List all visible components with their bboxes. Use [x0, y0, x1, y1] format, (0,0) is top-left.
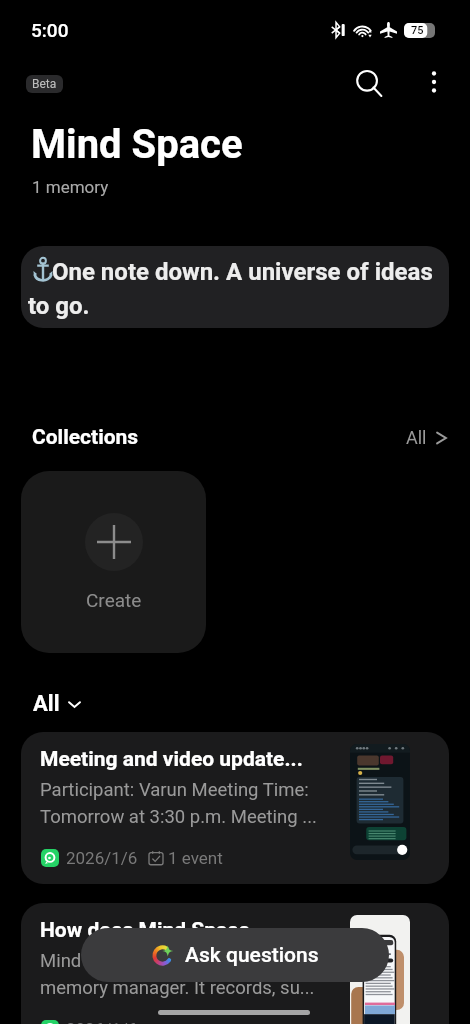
- staticText: 2026/1/6: [66, 848, 138, 868]
- button[interactable]: All: [400, 421, 455, 454]
- button[interactable]: More options: [412, 60, 456, 104]
- staticText: Beta: [32, 77, 57, 91]
- staticText: 1 memory: [32, 177, 109, 197]
- staticText: Participant: Varun Meeting Time: Tomorro…: [40, 779, 330, 827]
- staticText: 5:00: [31, 19, 69, 41]
- button[interactable]: Create: [21, 471, 206, 653]
- button[interactable]: Search: [347, 61, 391, 105]
- button[interactable]: Meeting and video update...: [21, 732, 449, 884]
- button[interactable]: One note down. A universe of ideas to go…: [21, 246, 449, 328]
- staticText: 1 event: [168, 848, 223, 868]
- staticText: How does Mind Space...: [40, 918, 330, 943]
- staticText: Collections: [32, 425, 139, 450]
- staticText: Mind Space: [31, 121, 243, 168]
- button[interactable]: How does Mind Space...: [21, 903, 449, 1024]
- staticText: Meeting and video update...: [40, 747, 330, 772]
- staticText: Create: [86, 589, 142, 611]
- staticText: 75: [411, 24, 424, 37]
- button[interactable]: Ask questions: [81, 928, 389, 982]
- staticText: 2026/1/6: [66, 1019, 138, 1024]
- staticText: One note down. A universe of ideas to go…: [28, 258, 442, 320]
- staticText: All: [406, 427, 427, 448]
- button[interactable]: Beta: [26, 75, 63, 93]
- staticText: Ask questions: [185, 943, 319, 968]
- button[interactable]: All: [32, 688, 82, 720]
- staticText: Mind Space is an AI-powered memory manag…: [40, 950, 335, 998]
- staticText: All: [33, 691, 60, 717]
